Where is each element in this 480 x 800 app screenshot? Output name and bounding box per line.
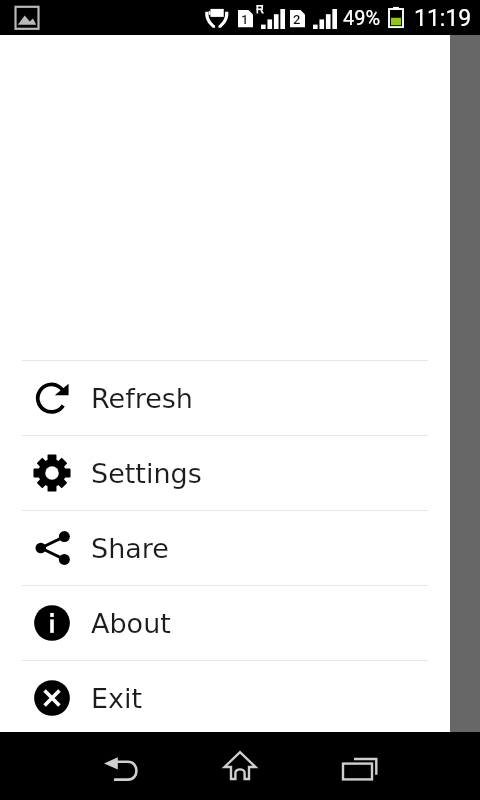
staticText: 49% bbox=[343, 6, 381, 29]
button[interactable]: Back bbox=[78, 732, 162, 800]
staticText: About bbox=[91, 608, 171, 639]
button[interactable]: Home bbox=[198, 732, 282, 800]
button[interactable]: Settings bbox=[0, 436, 450, 510]
staticText: Exit bbox=[91, 683, 143, 714]
button[interactable]: About bbox=[0, 586, 450, 660]
staticText: Settings bbox=[91, 458, 202, 489]
button[interactable]: Exit bbox=[0, 661, 450, 735]
button[interactable]: Refresh bbox=[0, 361, 450, 435]
staticText: Share bbox=[91, 533, 169, 564]
staticText: 2 bbox=[293, 12, 301, 27]
staticText: 1 bbox=[241, 12, 249, 27]
button[interactable]: Recent apps bbox=[318, 732, 402, 800]
staticText: Refresh bbox=[91, 383, 193, 414]
staticText: 11:19 bbox=[414, 5, 472, 32]
button[interactable]: Share bbox=[0, 511, 450, 585]
